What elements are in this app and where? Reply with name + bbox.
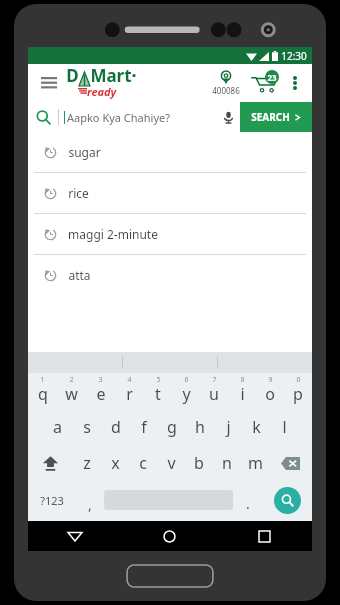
staticText: D	[66, 64, 79, 87]
button[interactable]: k	[242, 409, 270, 445]
staticText: 6	[184, 375, 189, 385]
staticText: u	[209, 383, 219, 405]
button[interactable]: h	[186, 409, 214, 445]
staticText: m	[248, 452, 263, 474]
staticText: atta	[68, 267, 91, 283]
staticText: j	[226, 416, 231, 438]
staticText: v	[167, 452, 176, 474]
staticText: Aapko Kya Chahiye?	[67, 110, 170, 125]
staticText: sugar	[68, 144, 101, 160]
button[interactable]: Backspace	[269, 445, 312, 481]
button[interactable]: 8	[228, 373, 256, 409]
staticText: n	[222, 452, 232, 474]
staticText: p	[293, 383, 303, 405]
staticText: s	[83, 416, 91, 438]
staticText: q	[38, 383, 48, 405]
button[interactable]: More options	[286, 70, 304, 96]
button[interactable]: n	[213, 445, 241, 481]
staticText: z	[83, 452, 91, 474]
button[interactable]: Recent apps	[217, 521, 312, 551]
button[interactable]: 1	[28, 373, 57, 409]
button[interactable]: Voice search	[216, 102, 240, 132]
staticText: 1	[40, 375, 45, 385]
button[interactable]: 7	[200, 373, 228, 409]
button[interactable]: 0	[284, 373, 312, 409]
button[interactable]: j	[214, 409, 242, 445]
button[interactable]: Cart, 23 items	[250, 70, 280, 96]
button[interactable]: Aapko Kya Chahiye?	[67, 102, 216, 132]
staticText: r	[126, 383, 133, 405]
button[interactable]: Search	[262, 481, 312, 519]
button[interactable]: v	[157, 445, 185, 481]
button[interactable]: Back	[28, 521, 122, 551]
button[interactable]: a	[43, 409, 72, 445]
button[interactable]: sugar	[28, 132, 312, 172]
staticText: 23	[267, 72, 277, 83]
staticText: h	[195, 416, 205, 438]
staticText: Mart	[90, 64, 132, 87]
button[interactable]: maggi 2-minute	[28, 214, 312, 254]
staticText: 9	[268, 375, 273, 385]
button[interactable]: 400086	[210, 70, 242, 96]
staticText: e	[96, 383, 106, 405]
staticText: o	[265, 383, 275, 405]
staticText: 12:30	[281, 49, 307, 63]
staticText: i	[240, 383, 245, 405]
staticText: k	[252, 416, 261, 438]
button[interactable]: 4	[115, 373, 144, 409]
button[interactable]: b	[185, 445, 213, 481]
staticText: c	[139, 452, 147, 474]
staticText: ready	[87, 84, 117, 99]
button[interactable]: z	[72, 445, 101, 481]
staticText: x	[111, 452, 120, 474]
button[interactable]: .	[233, 481, 262, 519]
staticText: a	[53, 416, 62, 438]
staticText: g	[167, 416, 177, 438]
button[interactable]: atta	[28, 255, 312, 295]
staticText: f	[141, 416, 147, 438]
staticText: ?123	[40, 493, 64, 508]
staticText: b	[194, 452, 204, 474]
button[interactable]: l	[270, 409, 298, 445]
staticText: t	[155, 383, 161, 405]
staticText: .	[246, 494, 250, 513]
button[interactable]: rice	[28, 173, 312, 213]
staticText: 400086	[212, 85, 240, 96]
staticText: rice	[68, 185, 89, 201]
staticText: 5	[156, 375, 161, 385]
button[interactable]: g	[158, 409, 186, 445]
staticText: 4	[127, 375, 132, 385]
button[interactable]: Menu	[36, 70, 62, 96]
button[interactable]: 2	[57, 373, 86, 409]
button[interactable]: ,	[75, 481, 104, 519]
button[interactable]: s	[72, 409, 101, 445]
button[interactable]: ?123	[28, 481, 75, 519]
staticText: 3	[98, 375, 103, 385]
button[interactable]: 6	[172, 373, 200, 409]
button[interactable]: d	[101, 409, 130, 445]
staticText: l	[282, 416, 287, 438]
button[interactable]: x	[101, 445, 129, 481]
staticText: 0	[296, 375, 301, 385]
staticText: w	[65, 383, 78, 405]
staticText: y	[182, 383, 191, 405]
staticText: SEARCH	[251, 110, 290, 124]
staticText: 7	[212, 375, 217, 385]
button[interactable]: c	[129, 445, 157, 481]
staticText: maggi 2-minute	[68, 226, 158, 242]
staticText: d	[111, 416, 121, 438]
button[interactable]: 9	[256, 373, 284, 409]
button[interactable]: f	[130, 409, 158, 445]
button[interactable]: SEARCH	[240, 102, 312, 132]
button[interactable]: m	[241, 445, 269, 481]
staticText: 2	[69, 375, 74, 385]
button[interactable]: 5	[144, 373, 172, 409]
button[interactable]: 3	[86, 373, 115, 409]
button[interactable]: Shift	[28, 445, 72, 481]
staticText: 8	[240, 375, 245, 385]
staticText: ,	[88, 495, 92, 514]
button[interactable]: Home	[122, 521, 217, 551]
